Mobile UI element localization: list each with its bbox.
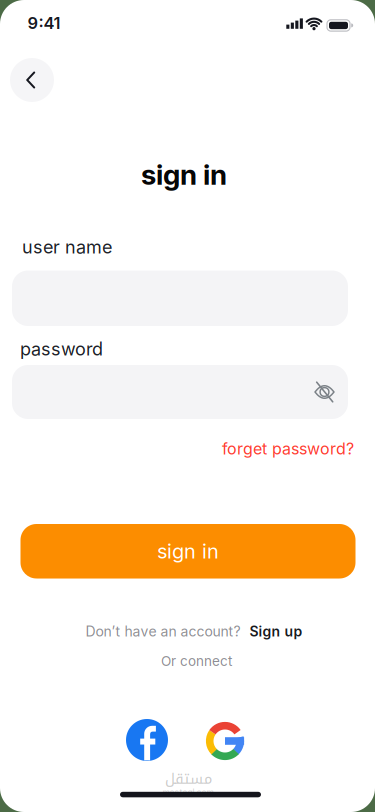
staticText: 9:41 [27,13,60,33]
staticText: mostaql.com [162,787,213,798]
staticText: Or connect [161,653,232,669]
button[interactable]: Back [10,58,54,102]
staticText: forget password? [222,439,354,458]
staticText: مستقل [164,765,211,793]
staticText: sign in [157,539,219,563]
button[interactable]: sign in [20,524,355,578]
button[interactable]: Sign in with Facebook [126,719,168,761]
staticText: sign in [141,158,227,191]
staticText: Don’t have an account? [85,623,240,640]
staticText: password [20,338,103,360]
button[interactable]: Sign up [249,623,302,640]
button[interactable]: Show password [312,380,336,404]
button[interactable]: password [12,365,348,419]
staticText: user name [22,236,112,258]
button[interactable]: Sign in with Google [205,721,245,761]
button[interactable]: forget password? [222,439,354,458]
staticText: Sign up [249,623,302,640]
